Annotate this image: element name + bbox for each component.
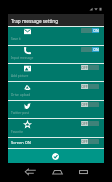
button[interactable]: ON xyxy=(81,47,99,52)
staticText: OFF xyxy=(81,65,88,70)
button[interactable]: Screen ON xyxy=(8,138,104,148)
staticText: Save it xyxy=(11,37,21,41)
button[interactable]: Input message xyxy=(8,46,104,64)
button[interactable]: Recents xyxy=(76,165,90,179)
staticText: OFF xyxy=(81,102,88,107)
staticText: Drive upload xyxy=(11,93,31,97)
staticText: Trap message setting xyxy=(11,18,59,24)
staticText: OFF xyxy=(81,139,88,144)
staticText: ON xyxy=(93,47,99,52)
button[interactable]: OFF xyxy=(81,84,99,89)
staticText: Favorite xyxy=(11,130,24,134)
staticText: Twitter post xyxy=(11,111,29,115)
button[interactable]: Twitter post xyxy=(8,101,104,119)
button[interactable]: Back xyxy=(23,165,37,179)
staticText: Screen ON xyxy=(11,140,31,145)
button[interactable]: Home xyxy=(50,165,64,179)
button[interactable]: ON xyxy=(81,28,99,33)
button[interactable]: Confirm xyxy=(52,153,59,160)
button[interactable]: Add picture xyxy=(8,64,104,82)
button[interactable]: Drive upload xyxy=(8,83,104,101)
button[interactable]: OFF xyxy=(81,65,99,70)
button[interactable]: OFF xyxy=(81,102,99,107)
staticText: OFF xyxy=(81,84,88,89)
staticText: ON xyxy=(93,28,99,33)
button[interactable]: OFF xyxy=(81,139,99,144)
button[interactable]: Favorite xyxy=(8,120,104,138)
button[interactable]: OFF xyxy=(81,121,99,126)
staticText: Add picture xyxy=(11,74,29,78)
staticText: OFF xyxy=(81,121,88,126)
staticText: Input message xyxy=(11,56,34,60)
button[interactable]: Save it xyxy=(8,27,104,45)
